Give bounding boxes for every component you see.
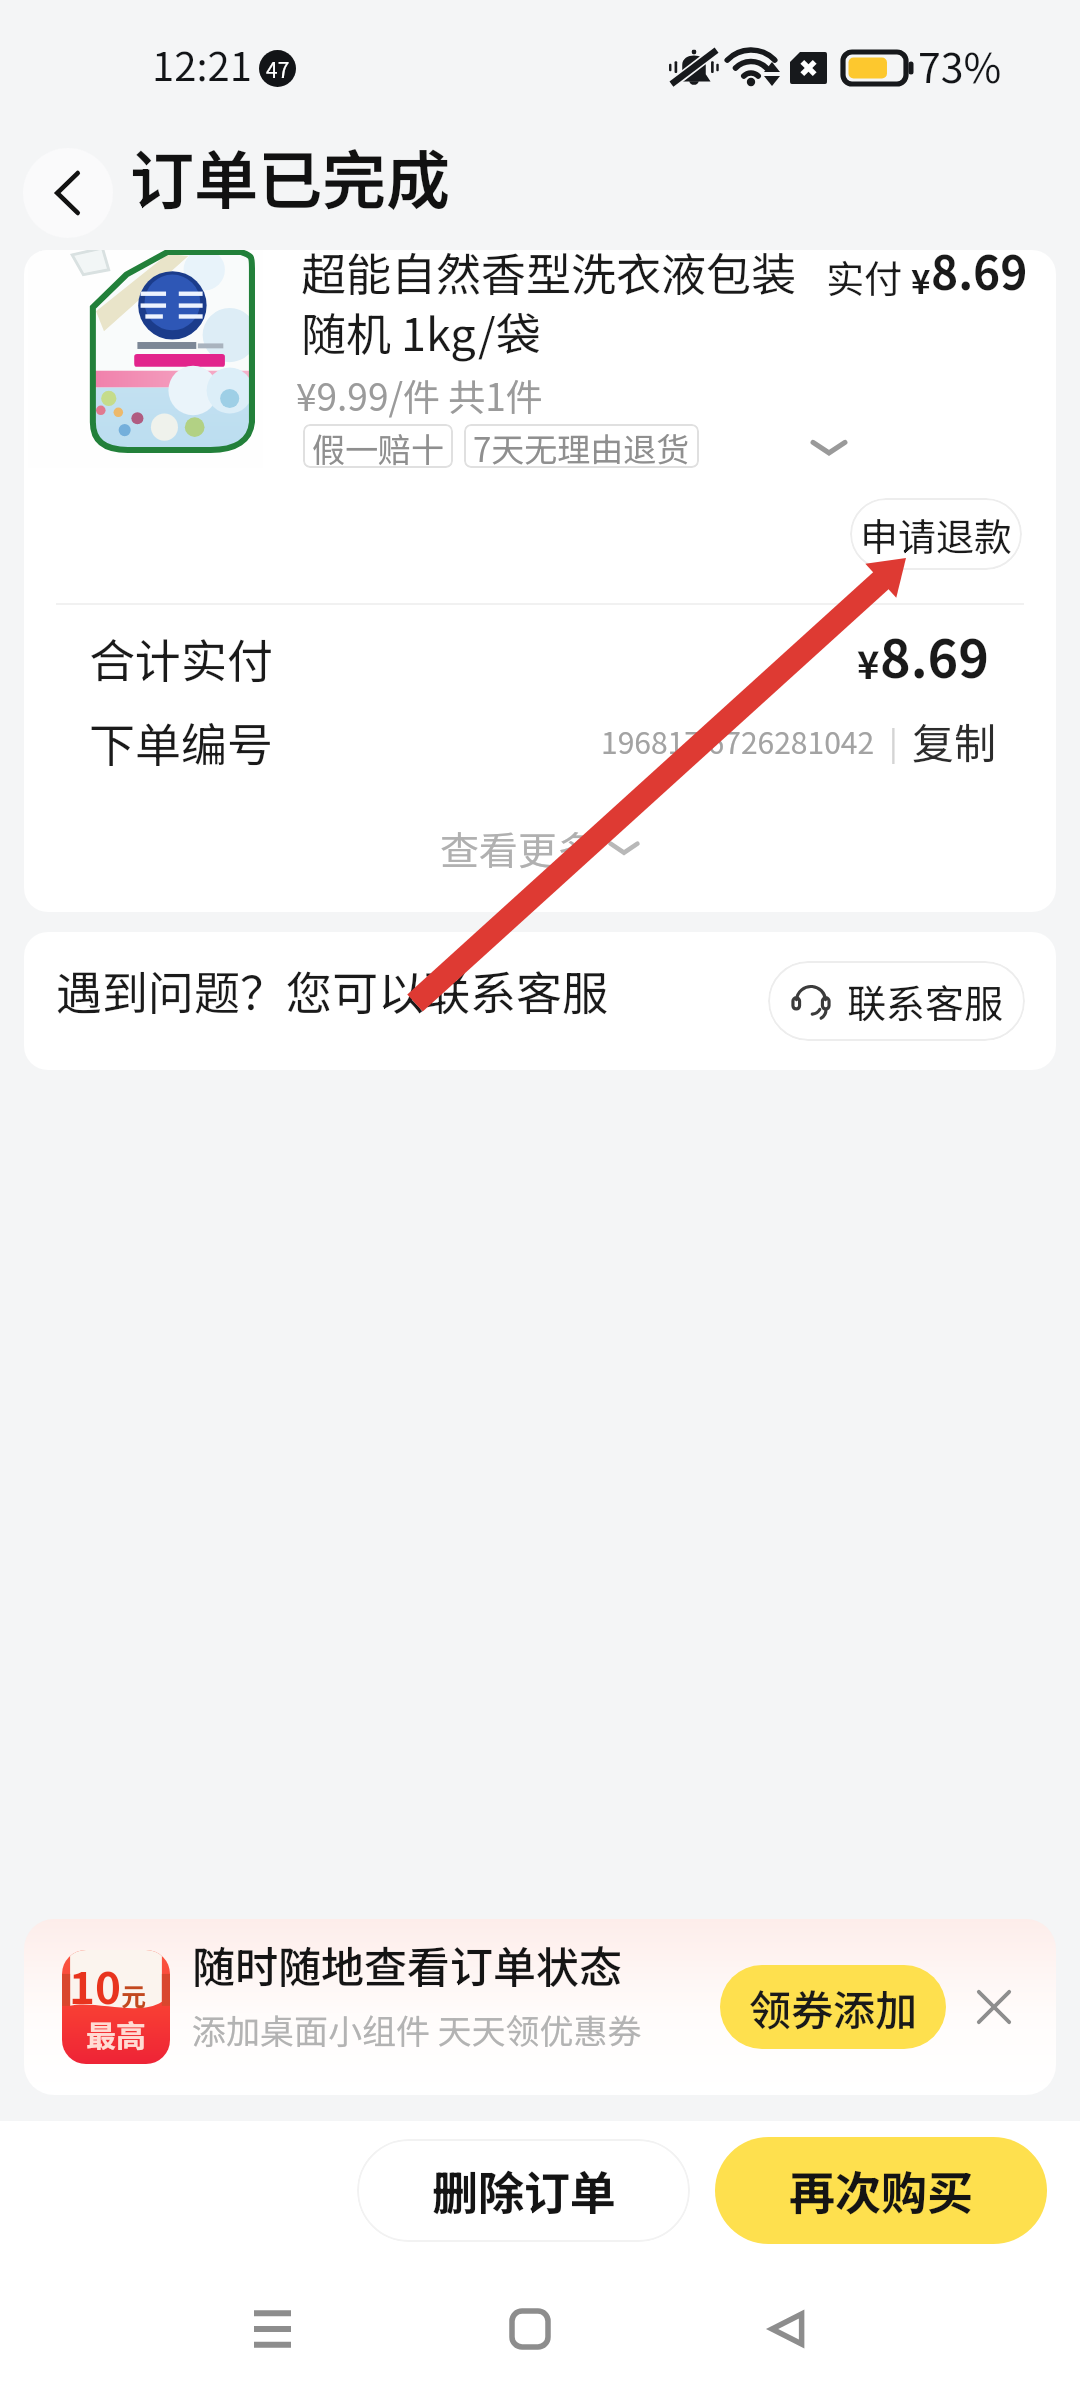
staticText: 添加桌面小组件 天天领优惠券 <box>192 2005 642 2054</box>
staticText: 12:21 <box>152 35 252 93</box>
staticText: 领券添加 <box>749 1977 918 2038</box>
staticText: 申请退款 <box>860 507 1013 562</box>
staticText: 超能自然香型洗衣液包装 <box>301 250 797 304</box>
staticText: 7天无理由退货 <box>473 424 690 468</box>
button[interactable]: 复制 <box>912 710 997 771</box>
staticText: 73% <box>918 35 1002 94</box>
button[interactable]: Back <box>23 148 113 238</box>
staticText: 再次购买 <box>789 2157 973 2224</box>
staticText: 实付 <box>826 250 911 304</box>
staticText: 订单已完成 <box>130 130 450 223</box>
staticText: 最高 <box>86 2012 146 2055</box>
staticText: 联系客服 <box>847 973 1004 1029</box>
button[interactable]: 联系客服 <box>768 961 1025 1041</box>
button[interactable]: 申请退款 <box>850 498 1022 570</box>
staticText: 10 <box>69 1953 121 2017</box>
staticText: 遇到问题？您可以联系客服 <box>56 957 608 1024</box>
staticText: 随机 1kg/袋 <box>301 299 541 364</box>
staticText: 196817 6726281042 <box>601 719 875 762</box>
staticText: 元 <box>121 1977 147 2013</box>
button[interactable]: Back <box>715 2257 859 2400</box>
staticText: ¥9.99/件 共1件 <box>296 368 543 422</box>
staticText: 随时随地查看订单状态 <box>192 1933 622 1995</box>
button[interactable]: Home <box>458 2257 602 2400</box>
staticText: 47 <box>266 54 290 84</box>
staticText: 合计实付 <box>89 625 273 692</box>
staticText: 复制 <box>912 710 997 771</box>
staticText: ¥ <box>911 256 931 304</box>
button[interactable]: 领券添加 <box>720 1965 946 2049</box>
staticText: 下单编号 <box>89 709 273 776</box>
button[interactable]: Close <box>964 1977 1024 2037</box>
button[interactable]: 再次购买 <box>715 2137 1047 2244</box>
button[interactable]: 删除订单 <box>357 2139 690 2242</box>
staticText: 假一赔十 <box>312 424 444 468</box>
button[interactable]: 查看更多 <box>24 814 1056 882</box>
staticText: 删除订单 <box>432 2157 616 2224</box>
staticText: 8.69 <box>880 618 989 693</box>
staticText: ¥ <box>857 635 880 690</box>
button[interactable]: Recent apps <box>200 2257 344 2400</box>
staticText: | <box>889 718 898 764</box>
button[interactable]: Expand order <box>784 414 874 480</box>
staticText: 8.69 <box>931 250 1028 304</box>
staticText: 查看更多 <box>440 820 597 876</box>
